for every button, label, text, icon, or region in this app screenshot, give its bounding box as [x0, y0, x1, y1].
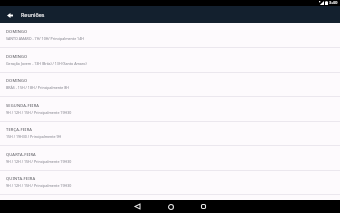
staticText: QUARTA-FEIRA — [6, 152, 36, 157]
staticText: 9H / 12H / 15H / Principalmente 19H30 — [6, 183, 72, 188]
button[interactable]: SEGUNDA-FEIRA — [0, 97, 340, 122]
staticText: DOMINGO — [6, 54, 28, 59]
staticText: DOMINGO — [6, 29, 28, 34]
button[interactable]: TERÇA-FEIRA — [0, 121, 340, 146]
staticText: 3:40 — [329, 0, 338, 6]
staticText: Reuniões — [21, 11, 45, 18]
staticText: BRÁS - 15H / 18H / Principalmente 8H — [6, 85, 70, 90]
button[interactable]: QUINTA-FEIRA — [0, 170, 340, 195]
button[interactable]: Home — [162, 200, 179, 213]
staticText: SANTO AMARO - 7H/ 10H/ Principalmente 14… — [6, 36, 84, 41]
button[interactable]: Recents — [195, 200, 212, 213]
staticText: QUINTA-FEIRA — [6, 176, 36, 181]
staticText: 15H / 19H30 / Principalmente 9H — [6, 134, 62, 139]
button[interactable]: Back — [5, 10, 15, 20]
button[interactable]: Back — [129, 200, 146, 213]
button[interactable]: DOMINGO — [0, 23, 340, 48]
staticText: Geração Jovem - 13H (Brás) / 13H (Santo … — [6, 61, 87, 66]
staticText: TERÇA-FEIRA — [6, 127, 33, 132]
staticText: 9H / 12H / 15H / Principalmente 19H30 — [6, 159, 72, 164]
staticText: SEGUNDA-FEIRA — [6, 103, 40, 108]
button[interactable]: QUARTA-FEIRA — [0, 146, 340, 171]
staticText: 9H / 12H / 15H / Principalmente 19H30 — [6, 110, 72, 115]
button[interactable]: DOMINGO — [0, 48, 340, 73]
staticText: DOMINGO — [6, 78, 28, 83]
button[interactable]: DOMINGO — [0, 72, 340, 97]
